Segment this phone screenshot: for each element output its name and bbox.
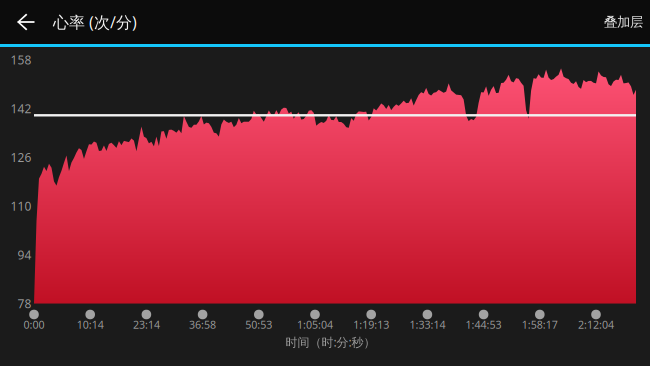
staticText: 1:44:53 <box>466 317 502 332</box>
staticText: 94 <box>17 247 31 263</box>
staticText: 1:19:13 <box>353 317 389 332</box>
staticText: 50:53 <box>245 317 272 332</box>
button[interactable]: 叠加层 <box>583 0 643 44</box>
staticText: 1:05:04 <box>297 317 333 332</box>
staticText: 23:14 <box>133 317 160 332</box>
staticText: 78 <box>17 295 31 311</box>
staticText: 2:12:04 <box>578 317 614 332</box>
staticText: 126 <box>10 149 31 165</box>
staticText: 36:58 <box>189 317 216 332</box>
staticText: 叠加层 <box>604 14 643 30</box>
staticText: 1:58:17 <box>522 317 558 332</box>
staticText: 10:14 <box>77 317 104 332</box>
button[interactable]: 心率 (次/分) <box>53 0 163 44</box>
staticText: 1:33:14 <box>409 317 445 332</box>
button[interactable]: Back <box>6 0 46 44</box>
staticText: 158 <box>10 52 31 68</box>
staticText: 110 <box>10 198 31 214</box>
staticText: 心率 (次/分) <box>53 11 137 33</box>
staticText: 时间（时:分:秒） <box>285 334 375 350</box>
staticText: 142 <box>10 101 31 117</box>
staticText: 0:00 <box>23 317 44 332</box>
